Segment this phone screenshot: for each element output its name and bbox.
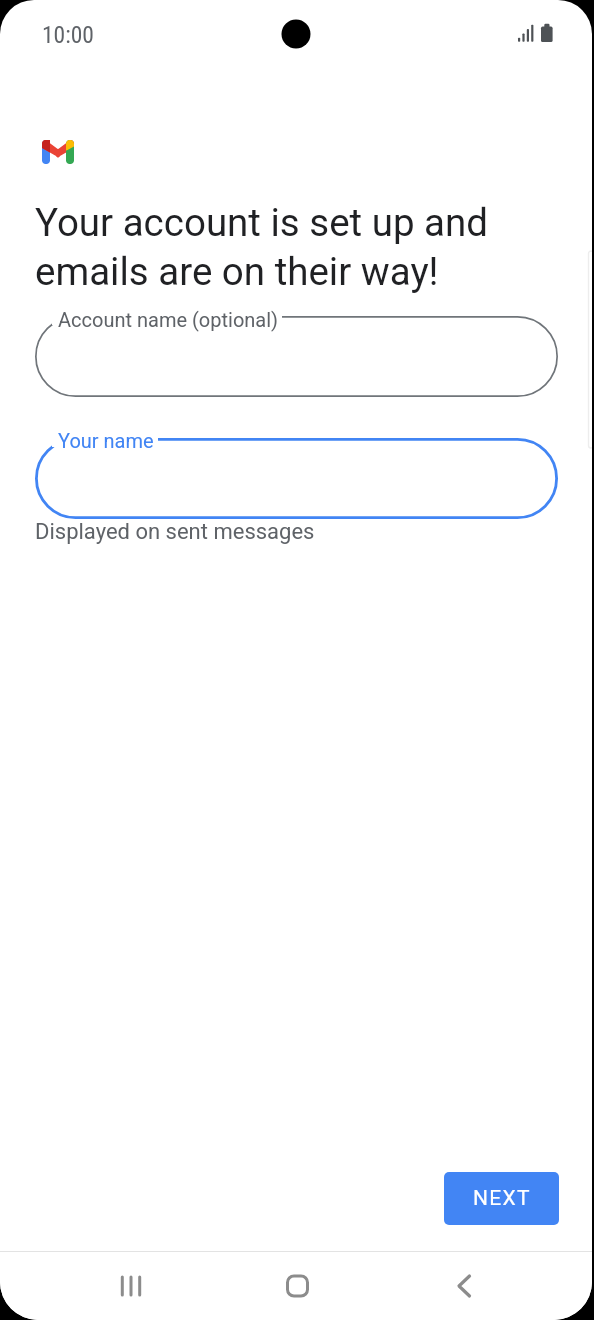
- button[interactable]: Home: [214, 1252, 379, 1320]
- button[interactable]: [35, 438, 558, 519]
- button[interactable]: NEXT: [444, 1172, 559, 1225]
- button[interactable]: Recent apps: [48, 1252, 214, 1320]
- staticText: Your account is set up and emails are on…: [35, 200, 489, 294]
- button[interactable]: Back: [379, 1252, 544, 1320]
- staticText: Account name (optional): [58, 308, 279, 331]
- button[interactable]: [35, 316, 558, 397]
- staticText: 10:00: [42, 21, 94, 49]
- staticText: Displayed on sent messages: [35, 519, 315, 545]
- staticText: NEXT: [473, 1186, 531, 1211]
- staticText: Your name: [58, 429, 154, 452]
